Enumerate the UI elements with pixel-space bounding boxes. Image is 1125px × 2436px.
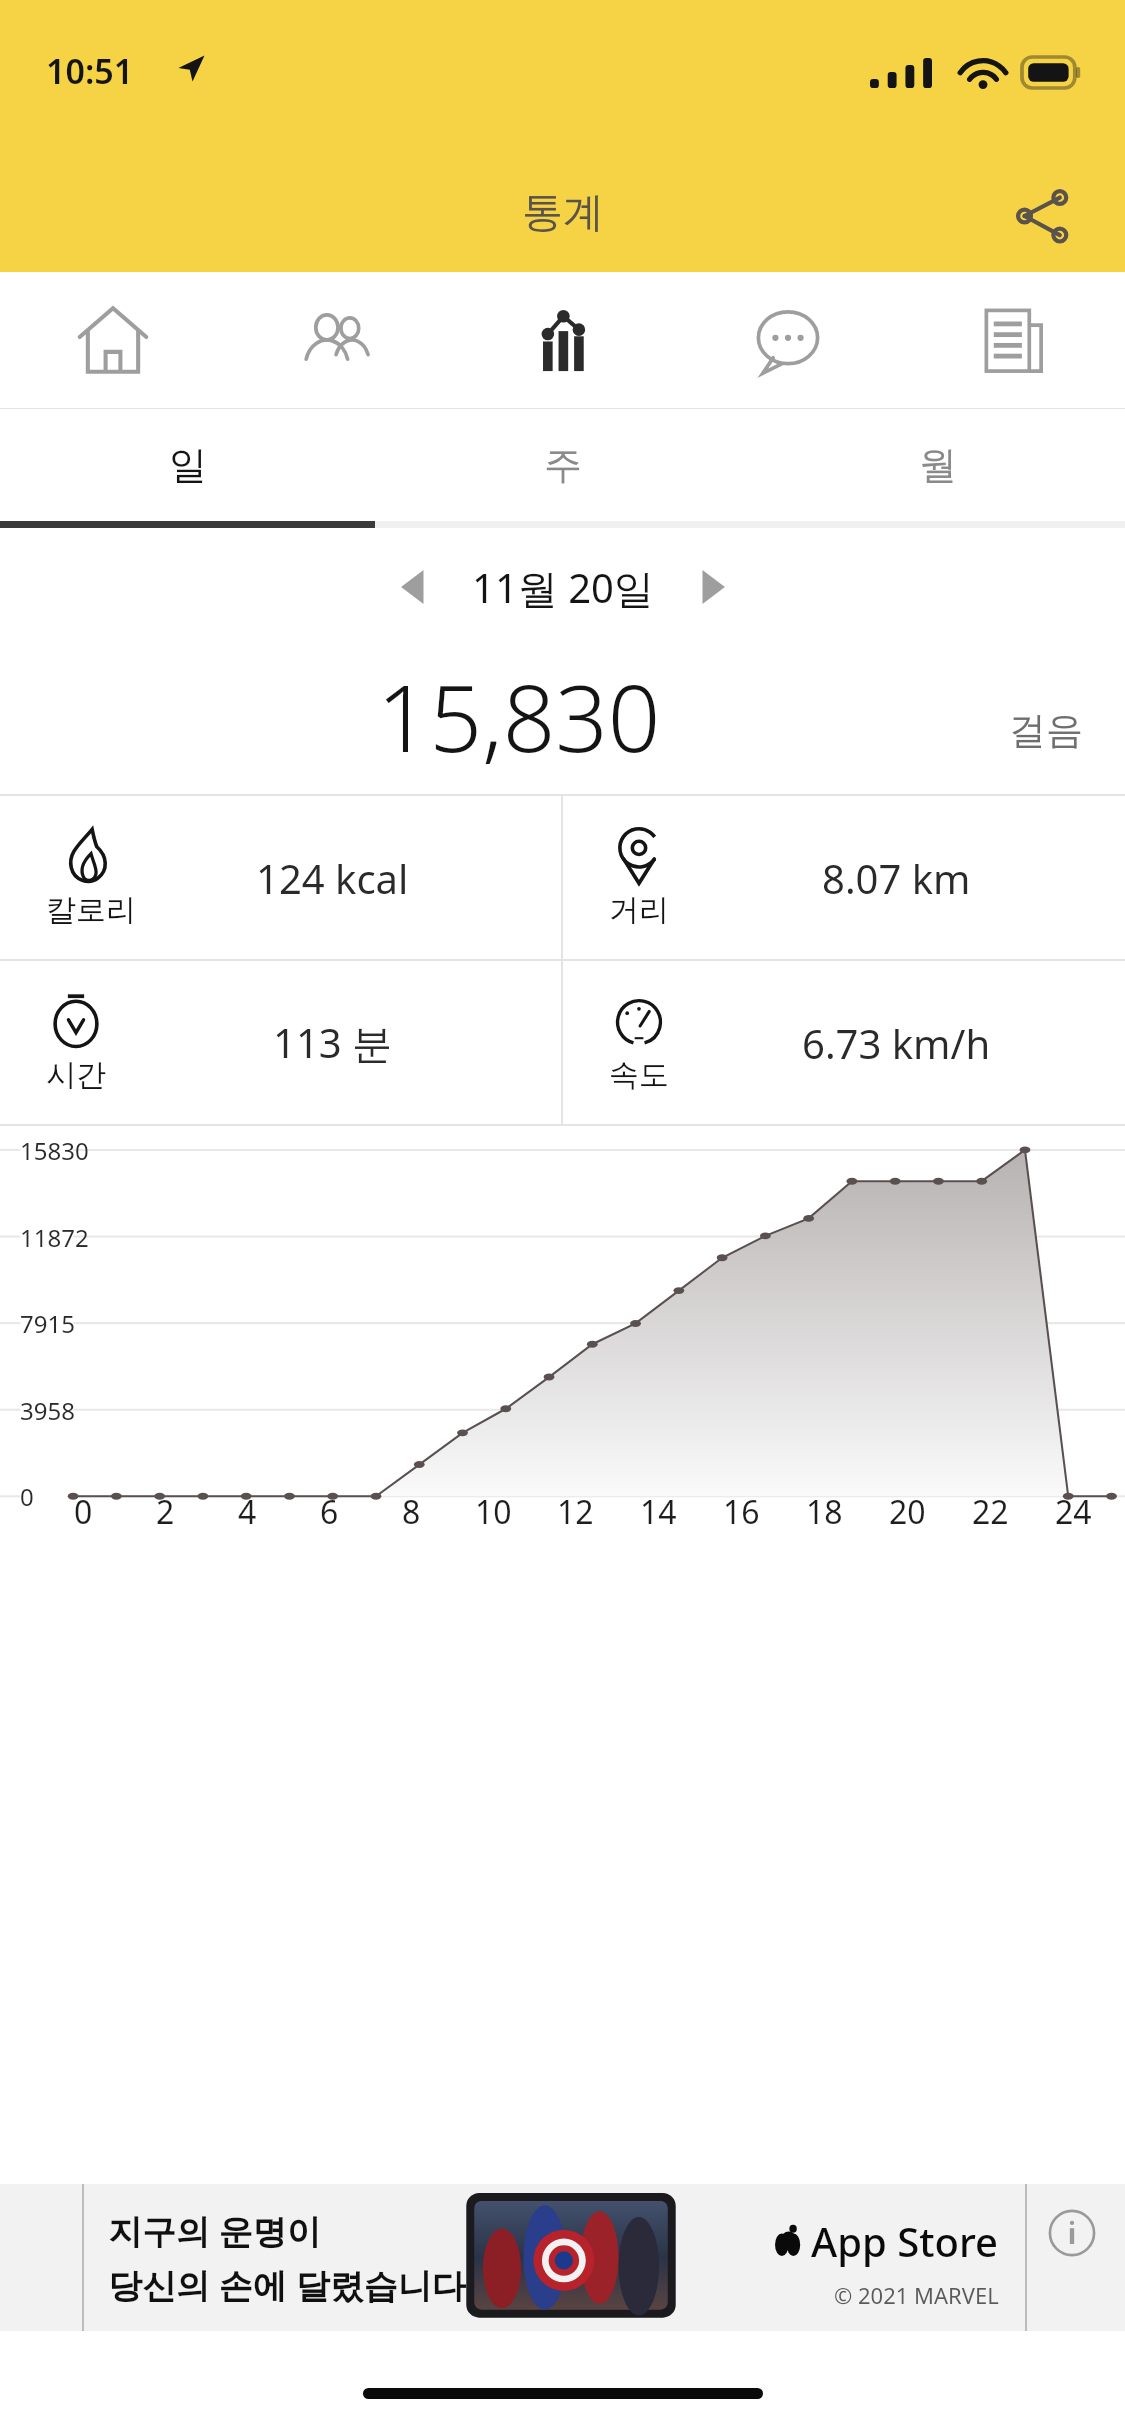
button[interactable]: 주 [375,409,750,521]
staticText: 15830 [20,1134,89,1167]
staticText: © 2021 MARVEL [834,2280,999,2310]
button[interactable]: Next day [668,543,756,631]
staticText: 113 분 [273,1015,393,1070]
staticText: 통계 [522,187,604,239]
button[interactable]: 월 [750,409,1125,521]
button[interactable]: Friends [225,272,450,408]
staticText: 20 [889,1490,926,1534]
staticText: 12 [557,1490,594,1534]
staticText: 7915 [20,1307,75,1340]
staticText: 11월 20일 [472,560,654,615]
staticText: 거리 [609,891,669,929]
staticText: 주 [544,441,582,489]
staticText: 3958 [20,1394,75,1427]
button[interactable]: Share [999,172,1087,260]
staticText: 8 [402,1490,421,1534]
staticText: App Store [811,2214,999,2268]
staticText: 22 [972,1490,1009,1534]
button[interactable]: 거리 [563,796,1125,959]
staticText: 124 kcal [256,851,409,905]
staticText: 걸음 [1009,707,1083,754]
button[interactable]: 시간 [0,961,561,1124]
staticText: 4 [238,1490,257,1534]
staticText: 지구의 운명이 [108,2208,321,2254]
staticText: 10 [475,1490,512,1534]
staticText: 10:51 [46,48,134,94]
staticText: 16 [723,1490,760,1534]
staticText: 칼로리 [46,891,136,929]
button[interactable]: Home [0,272,225,408]
staticText: 0 [20,1480,34,1513]
staticText: 18 [806,1490,843,1534]
button[interactable]: Chat [675,272,900,408]
staticText: 15,830 [377,654,661,779]
staticText: 당신의 손에 달렸습니다. [108,2262,476,2308]
button[interactable]: Previous day [370,543,458,631]
staticText: 월 [919,441,957,489]
button[interactable]: Statistics [450,272,675,408]
staticText: 0 [74,1490,93,1534]
button[interactable]: News [900,272,1125,408]
staticText: 2 [156,1490,175,1534]
staticText: 시간 [46,1056,106,1094]
staticText: 14 [640,1490,677,1534]
button[interactable]: 지구의 운명이 [0,2184,1125,2331]
staticText: 6.73 km/h [802,1016,991,1070]
staticText: 11872 [20,1221,89,1254]
button[interactable]: 일 [0,409,375,521]
staticText: 6 [320,1490,339,1534]
staticText: 일 [169,441,207,489]
button[interactable]: 속도 [563,961,1125,1124]
button[interactable]: 칼로리 [0,796,561,959]
staticText: 24 [1055,1490,1092,1534]
staticText: 속도 [609,1056,669,1094]
button[interactable]: Ad information [1045,2206,1099,2260]
staticText: 8.07 km [822,851,971,905]
